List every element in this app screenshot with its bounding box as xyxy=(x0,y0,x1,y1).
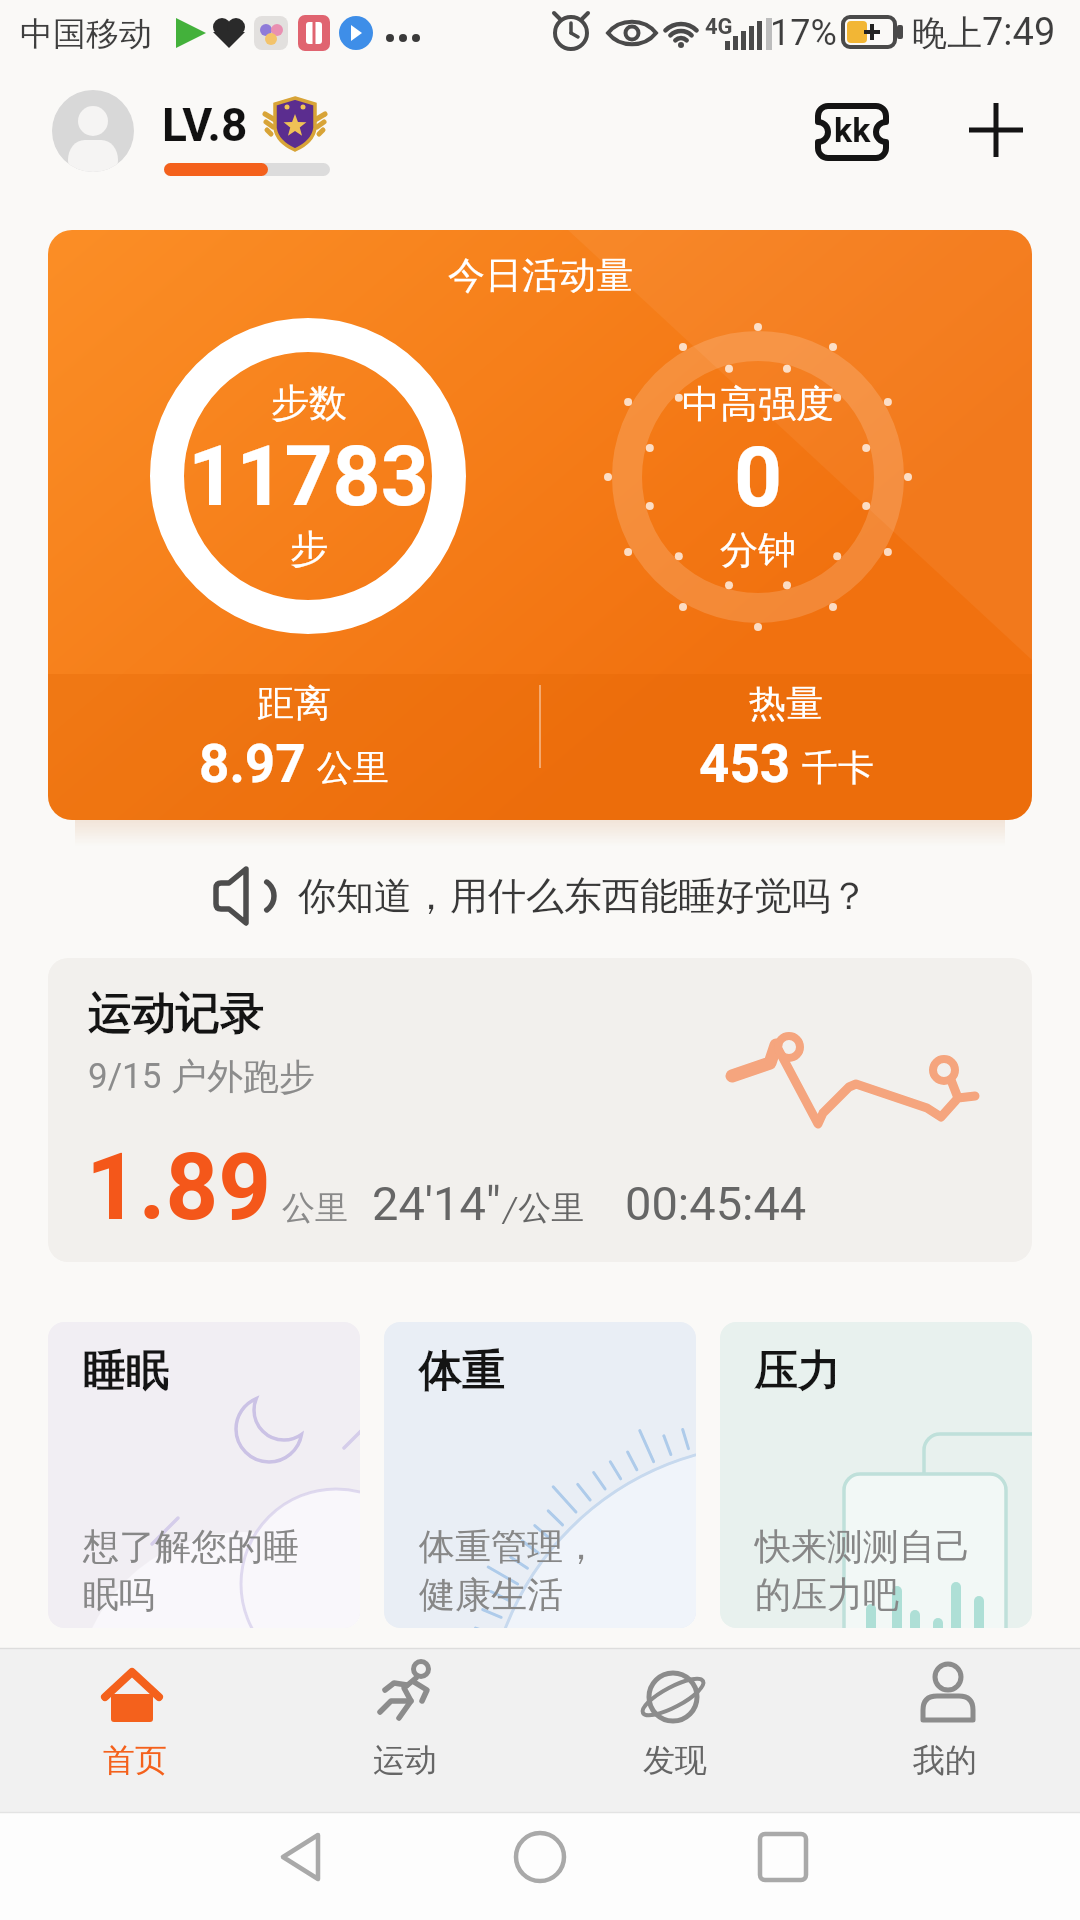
staticText: 分钟 xyxy=(720,526,796,574)
staticText: kk xyxy=(834,110,871,150)
staticText: 压力 xyxy=(755,1344,841,1398)
staticText: 距离 xyxy=(257,680,331,727)
staticText: 户外跑步 xyxy=(171,1054,315,1099)
button[interactable] xyxy=(52,90,134,172)
staticText: 0 xyxy=(734,428,783,526)
button[interactable]: 压力 xyxy=(720,1322,1032,1628)
staticText: 公里 xyxy=(306,745,389,790)
staticText: 步数 xyxy=(271,379,347,427)
staticText: 中高强度 xyxy=(682,380,834,428)
button[interactable]: 运动 xyxy=(270,1648,540,1812)
staticText: 4G xyxy=(705,14,733,40)
button[interactable]: 首页 xyxy=(0,1648,270,1812)
button[interactable]: 体重 xyxy=(384,1322,696,1628)
button[interactable]: 运动记录 xyxy=(48,958,1032,1262)
staticText: 体重管理， 健康生活 xyxy=(419,1524,599,1618)
staticText: 453 xyxy=(699,733,791,795)
button[interactable] xyxy=(700,1812,860,1920)
staticText: 1.89 xyxy=(86,1134,272,1242)
staticText: 运动记录 xyxy=(88,986,264,1041)
staticText: 24'14" xyxy=(372,1176,501,1231)
staticText: 发现 xyxy=(643,1740,707,1780)
button[interactable]: 你知道，用什么东西能睡好觉吗？ xyxy=(0,858,1080,934)
staticText: 步 xyxy=(290,525,328,573)
button[interactable]: LV.8 xyxy=(162,94,326,156)
staticText: 11783 xyxy=(188,427,429,525)
staticText: 公里 xyxy=(272,1187,348,1229)
button[interactable] xyxy=(220,1812,380,1920)
staticText: 今日活动量 xyxy=(448,252,633,299)
staticText: 想了解您的睡 眠吗 xyxy=(83,1524,299,1618)
button[interactable]: 今日活动量 xyxy=(48,230,1032,820)
staticText: 你知道，用什么东西能睡好觉吗？ xyxy=(298,872,868,920)
staticText: 睡眠 xyxy=(83,1344,169,1398)
staticText: LV.8 xyxy=(162,98,248,152)
staticText: 晚上 xyxy=(912,11,982,55)
button[interactable]: 发现 xyxy=(540,1648,810,1812)
staticText: 热量 xyxy=(749,680,823,727)
staticText: 千卡 xyxy=(791,745,874,790)
staticText: 体重 xyxy=(419,1344,505,1398)
button[interactable]: 睡眠 xyxy=(48,1322,360,1628)
button[interactable]: kk xyxy=(810,98,894,164)
staticText: 运动 xyxy=(373,1740,437,1780)
staticText: 我的 xyxy=(913,1740,977,1780)
staticText: 17% xyxy=(770,12,837,54)
button[interactable] xyxy=(962,96,1030,164)
staticText: 7:49 xyxy=(982,10,1056,55)
staticText: 首页 xyxy=(103,1740,167,1780)
staticText: 中国移动 xyxy=(20,13,152,55)
staticText: 9/15 xyxy=(88,1056,171,1097)
button[interactable] xyxy=(460,1812,620,1920)
staticText: 8.97 xyxy=(199,733,306,795)
staticText: 00:45:44 xyxy=(625,1176,807,1231)
staticText: 快来测测自己 的压力吧 xyxy=(755,1524,971,1618)
staticText: /公里 xyxy=(501,1187,585,1229)
button[interactable]: 我的 xyxy=(810,1648,1080,1812)
